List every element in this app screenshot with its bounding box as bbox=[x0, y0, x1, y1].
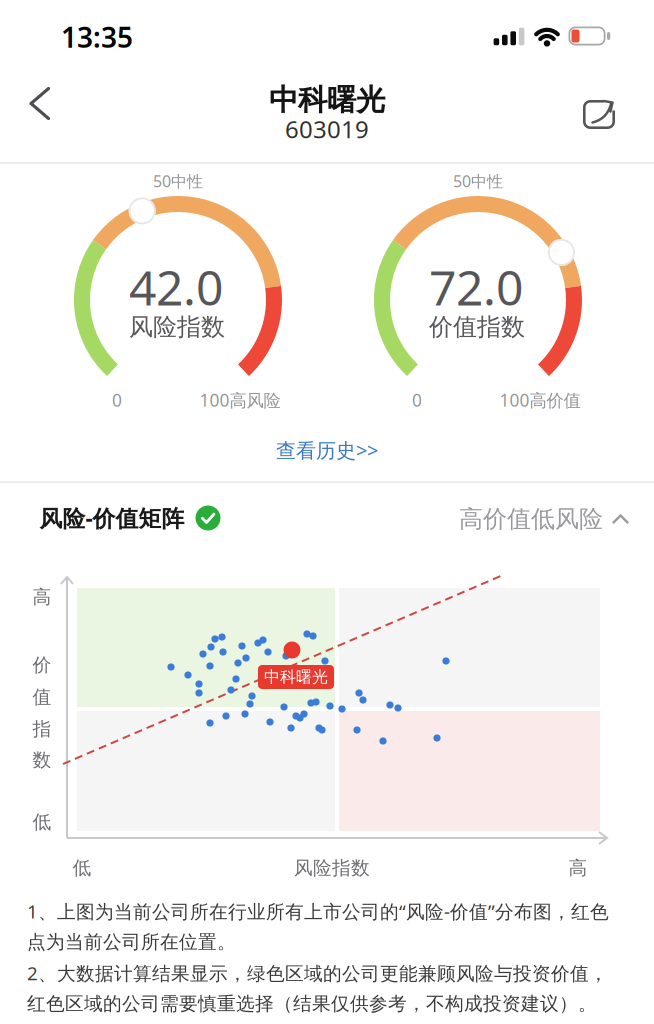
staticText: 100高价值 bbox=[499, 388, 580, 411]
staticText: 603019 bbox=[285, 113, 369, 145]
staticText: 13:35 bbox=[61, 18, 133, 56]
staticText: 中科曙光 bbox=[269, 82, 385, 118]
staticText: 50中性 bbox=[153, 170, 203, 192]
button[interactable]: 查看历史>> bbox=[276, 437, 378, 463]
staticText: 风险-价值矩阵 bbox=[39, 503, 184, 533]
staticText: 高 bbox=[568, 856, 587, 879]
staticText: 值 bbox=[32, 685, 51, 708]
staticText: 1、上图为当前公司所在行业所有上市公司的“风险-价值”分布图，红色 bbox=[27, 899, 609, 924]
staticText: 0 bbox=[112, 388, 122, 411]
staticText: 50中性 bbox=[453, 170, 503, 192]
staticText: 价 bbox=[32, 653, 51, 676]
staticText: 红色区域的公司需要慎重选择（结果仅供参考，不构成投资建议）。 bbox=[27, 992, 597, 1015]
staticText: 0 bbox=[412, 388, 422, 411]
staticText: 低 bbox=[32, 810, 51, 833]
button[interactable]: Back bbox=[18, 82, 62, 126]
staticText: 价值指数 bbox=[429, 312, 525, 342]
button[interactable]: 高价值低风险 bbox=[459, 504, 629, 534]
staticText: 100高风险 bbox=[199, 388, 280, 411]
staticText: 低 bbox=[72, 856, 91, 879]
staticText: 数 bbox=[32, 748, 51, 771]
staticText: 72.0 bbox=[429, 255, 523, 319]
staticText: 高 bbox=[32, 585, 51, 608]
staticText: 2、大数据计算结果显示，绿色区域的公司更能兼顾风险与投资价值， bbox=[27, 960, 608, 985]
staticText: 查看历史>> bbox=[276, 437, 378, 463]
staticText: 42.0 bbox=[129, 255, 223, 319]
staticText: 中科曙光 bbox=[264, 667, 328, 687]
staticText: 指 bbox=[32, 717, 51, 740]
button[interactable]: Share bbox=[577, 90, 621, 134]
staticText: 风险指数 bbox=[294, 856, 370, 879]
staticText: 高价值低风险 bbox=[459, 504, 603, 534]
staticText: 风险指数 bbox=[129, 312, 225, 342]
staticText: 点为当前公司所在位置。 bbox=[27, 931, 236, 953]
